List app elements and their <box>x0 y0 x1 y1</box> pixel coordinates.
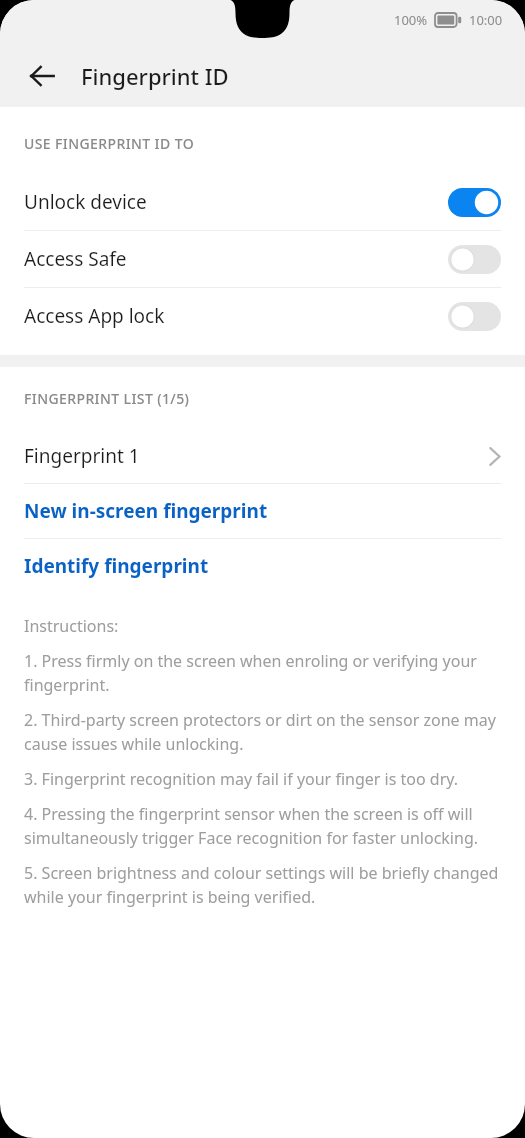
staticText: 2. Third-party screen protectors or dirt… <box>24 709 503 755</box>
staticText: 10:00 <box>469 11 503 29</box>
staticText: Identify fingerprint <box>24 553 209 579</box>
button[interactable]: Fingerprint 1 <box>0 429 525 483</box>
button[interactable]: New in-screen fingerprint <box>0 484 525 538</box>
button[interactable]: Access Safe <box>0 231 525 287</box>
staticText: 100% <box>394 11 428 29</box>
button[interactable]: Back <box>18 52 66 100</box>
button[interactable]: Access App lock <box>0 288 525 344</box>
staticText: Fingerprint 1 <box>24 443 140 469</box>
staticText: USE FINGERPRINT ID TO <box>24 134 195 153</box>
button[interactable]: Unlock device <box>0 174 525 230</box>
staticText: Instructions: <box>24 615 119 637</box>
staticText: New in-screen fingerprint <box>24 498 268 524</box>
button[interactable]: Identify fingerprint <box>0 539 525 593</box>
staticText: Fingerprint ID <box>81 61 229 91</box>
staticText: 5. Screen brightness and colour settings… <box>24 862 503 908</box>
staticText: FINGERPRINT LIST (1/5) <box>24 389 190 408</box>
staticText: 3. Fingerprint recognition may fail if y… <box>24 768 459 790</box>
staticText: 4. Pressing the fingerprint sensor when … <box>24 803 503 849</box>
staticText: Unlock device <box>24 189 147 215</box>
staticText: 1. Press firmly on the screen when enrol… <box>24 650 503 696</box>
staticText: Access App lock <box>24 303 165 329</box>
staticText: Access Safe <box>24 246 127 272</box>
